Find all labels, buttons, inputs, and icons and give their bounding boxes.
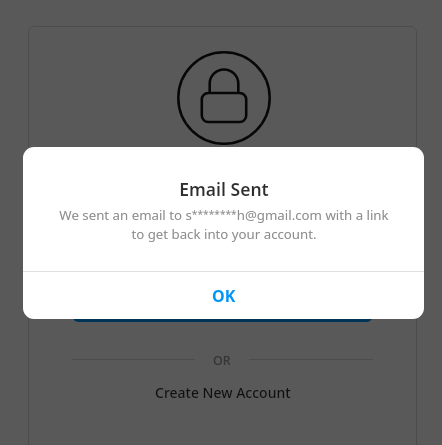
staticText: Trouble Logging In? xyxy=(141,161,305,184)
staticText: Send Login Link xyxy=(169,294,277,313)
staticText: OR xyxy=(213,352,231,369)
staticText: Email Sent xyxy=(179,177,269,201)
staticText: Create New Account xyxy=(155,383,291,402)
button[interactable]: Send Login Link xyxy=(73,285,372,322)
staticText: Enter your username or email and we'll s… xyxy=(70,194,375,230)
staticText: OK xyxy=(212,285,236,307)
other: Locked account icon xyxy=(177,51,271,145)
button[interactable]: OK xyxy=(23,272,424,319)
staticText: We sent an email to s********h@gmail.com… xyxy=(59,206,389,243)
button[interactable]: Create New Account xyxy=(28,377,417,407)
button[interactable]: Username or email xyxy=(73,237,372,275)
